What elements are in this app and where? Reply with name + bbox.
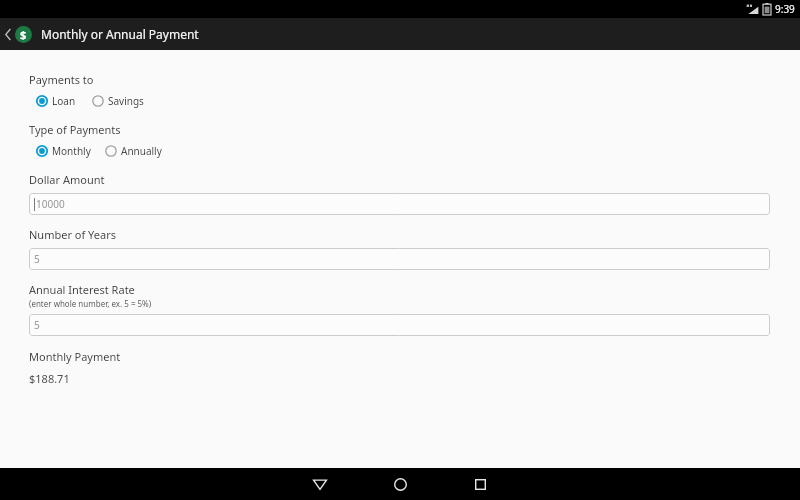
button[interactable]: Recent apps bbox=[456, 468, 504, 500]
staticText: Type of Payments bbox=[29, 122, 121, 137]
staticText: Annual Interest Rate bbox=[29, 282, 135, 297]
staticText: Loan bbox=[52, 94, 76, 108]
staticText: Dollar Amount bbox=[29, 172, 105, 187]
button[interactable]: Back bbox=[296, 468, 344, 500]
button[interactable]: Loan bbox=[35, 93, 77, 109]
staticText: 10000 bbox=[36, 197, 65, 211]
staticText: 5 bbox=[34, 318, 40, 332]
button[interactable]: Monthly bbox=[35, 143, 92, 159]
staticText: Savings bbox=[108, 94, 144, 108]
button[interactable]: Navigate up bbox=[0, 18, 34, 50]
staticText: $188.71 bbox=[29, 371, 70, 386]
button[interactable]: 5 bbox=[29, 314, 770, 336]
staticText: Monthly bbox=[52, 144, 91, 158]
button[interactable]: 10000 bbox=[29, 193, 770, 215]
staticText: 9:39 bbox=[775, 2, 795, 16]
staticText: Monthly or Annual Payment bbox=[41, 26, 199, 42]
staticText: Annually bbox=[121, 144, 162, 158]
button[interactable]: Savings bbox=[91, 93, 145, 109]
button[interactable]: 5 bbox=[29, 248, 770, 270]
staticText: Payments to bbox=[29, 72, 94, 87]
button[interactable]: Annually bbox=[104, 143, 163, 159]
staticText: Number of Years bbox=[29, 227, 116, 242]
staticText: (enter whole number, ex. 5 = 5%) bbox=[29, 298, 152, 309]
staticText: 5 bbox=[34, 252, 40, 266]
staticText: Monthly Payment bbox=[29, 349, 121, 364]
staticText: $ bbox=[20, 27, 27, 42]
button[interactable]: Home bbox=[376, 468, 424, 500]
